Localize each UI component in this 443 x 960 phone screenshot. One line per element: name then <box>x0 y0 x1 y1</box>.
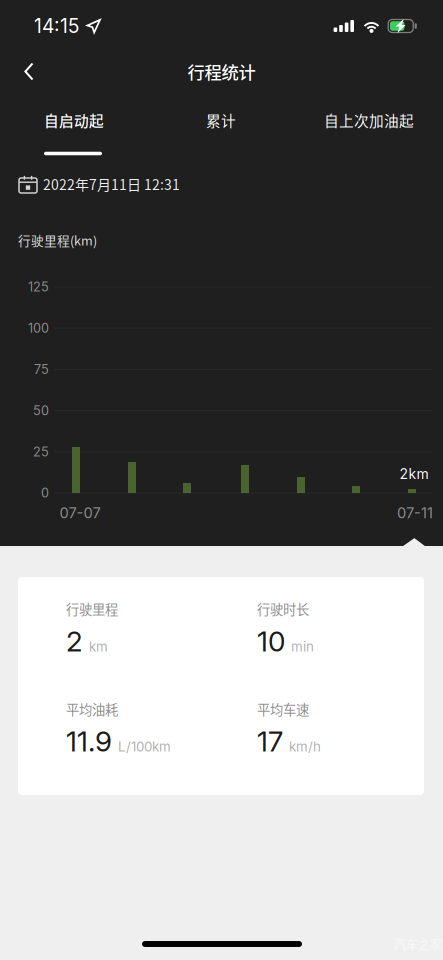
staticText: 2km <box>399 465 428 482</box>
staticText: 平均油耗 <box>66 699 118 718</box>
staticText: 0 <box>41 485 49 501</box>
staticText: km <box>89 638 108 655</box>
staticText: 17 <box>257 724 283 758</box>
staticText: 自上次加油起 <box>324 109 414 131</box>
staticText: 75 <box>34 362 49 377</box>
staticText: 平均车速 <box>257 699 309 718</box>
staticText: 11.9 <box>66 724 112 758</box>
staticText: 07-07 <box>59 504 100 522</box>
staticText: min <box>291 638 314 655</box>
staticText: 50 <box>33 403 49 418</box>
staticText: 行驶里程 <box>66 599 118 618</box>
staticText: 2022年7月11日 12:31 <box>43 174 180 194</box>
staticText: L/100km <box>118 739 171 755</box>
staticText: 行程统计 <box>187 59 255 84</box>
staticText: 10 <box>257 624 285 658</box>
staticText: km/h <box>289 739 321 755</box>
staticText: 2 <box>66 624 83 658</box>
staticText: 125 <box>28 279 49 295</box>
button[interactable]: 自启动起 <box>0 95 147 145</box>
staticText: 累计 <box>206 109 236 131</box>
staticText: 25 <box>33 444 49 459</box>
staticText: 自启动起 <box>44 109 104 131</box>
button[interactable]: Back <box>6 48 52 94</box>
staticText: 行驶时长 <box>257 599 309 618</box>
staticText: 100 <box>28 320 49 336</box>
staticText: 14:15 <box>34 14 79 38</box>
button[interactable]: 累计 <box>147 95 294 145</box>
staticText: 07-11 <box>397 504 433 522</box>
staticText: 行驶里程(km) <box>18 231 97 249</box>
button[interactable]: 自上次加油起 <box>295 95 442 145</box>
